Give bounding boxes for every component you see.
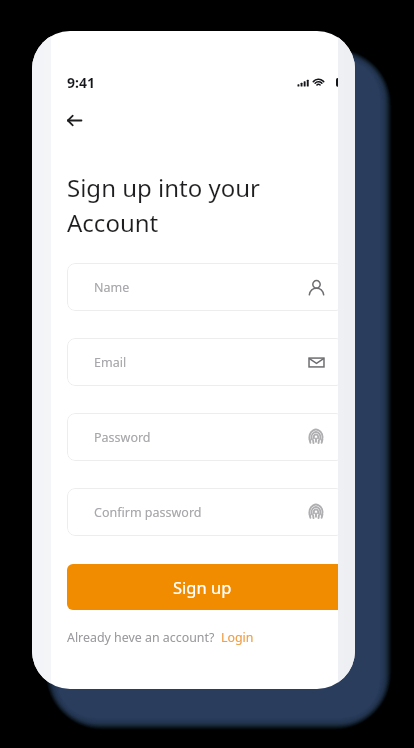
staticText: 9:41 bbox=[67, 73, 95, 92]
button[interactable]: Sign up bbox=[67, 564, 338, 610]
button[interactable]: Login bbox=[221, 629, 254, 646]
button[interactable]: Password bbox=[67, 413, 338, 461]
staticText: Name bbox=[94, 279, 130, 296]
button[interactable]: Email bbox=[67, 338, 338, 386]
staticText: Sign up into your Account bbox=[67, 171, 260, 239]
staticText: Confirm password bbox=[94, 504, 202, 521]
button[interactable]: Name bbox=[67, 263, 338, 311]
staticText: Sign up bbox=[173, 576, 232, 598]
button[interactable]: Back bbox=[60, 106, 88, 134]
staticText: Already heve an account? bbox=[67, 629, 215, 646]
button[interactable]: Confirm password bbox=[67, 488, 338, 536]
staticText: Email bbox=[94, 354, 127, 371]
staticText: Password bbox=[94, 429, 151, 446]
